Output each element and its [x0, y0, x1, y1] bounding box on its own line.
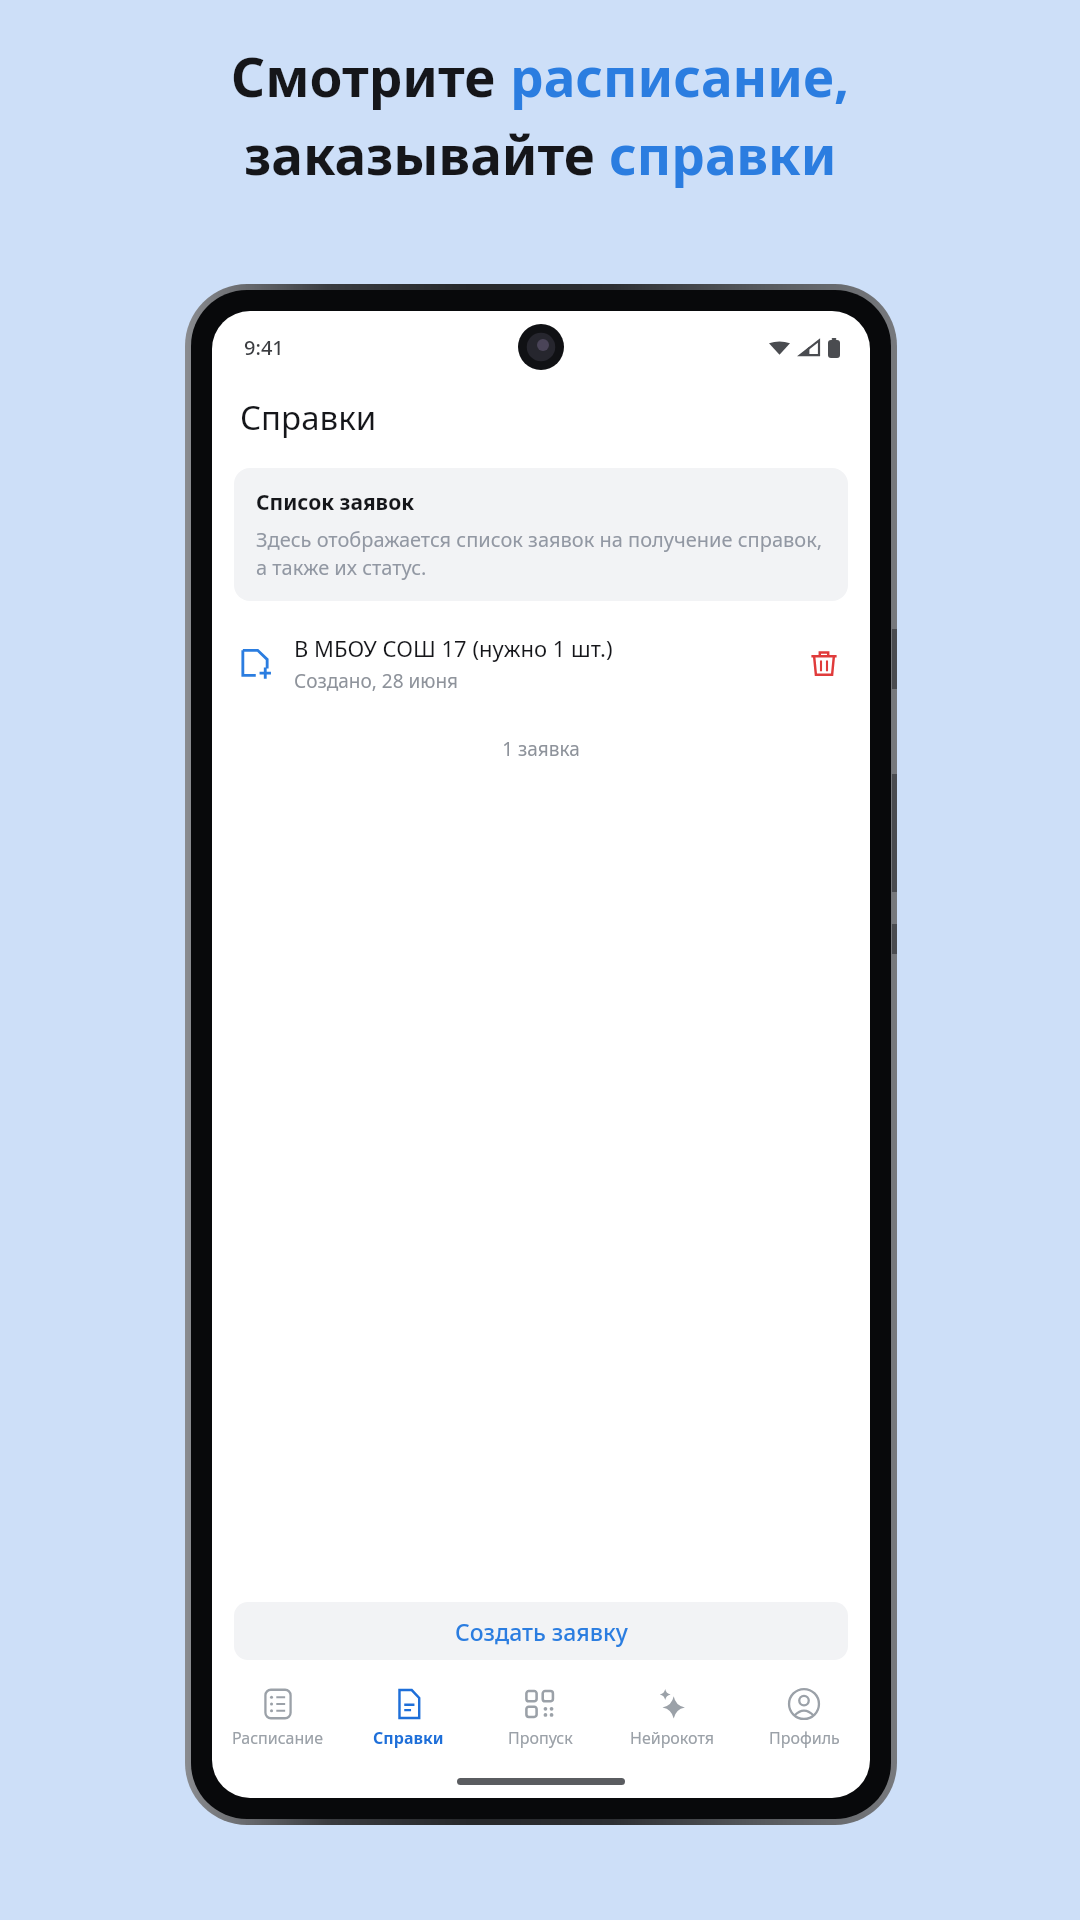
staticText: Профиль	[769, 1727, 840, 1749]
staticText: справки	[609, 118, 837, 190]
staticText: Список заявок	[256, 488, 415, 517]
button[interactable]: Расписание	[212, 1672, 343, 1764]
staticText: Создать заявку	[455, 1616, 628, 1647]
button[interactable]: Пропуск	[474, 1672, 606, 1764]
staticText: Расписание	[232, 1727, 324, 1749]
button[interactable]: Нейрокотя	[606, 1672, 738, 1764]
staticText: Справки	[240, 395, 377, 440]
button[interactable]: Профиль	[738, 1672, 870, 1764]
staticText: 9:41	[244, 334, 284, 361]
staticText: заказывайте	[244, 118, 609, 190]
staticText: Пропуск	[508, 1727, 573, 1749]
staticText: Смотрите	[231, 40, 510, 112]
button[interactable]: Удалить заявку	[802, 642, 846, 686]
button[interactable]: Справки	[343, 1672, 474, 1764]
staticText: Справки	[373, 1727, 444, 1749]
button[interactable]: Список заявок	[234, 468, 848, 601]
staticText: расписание,	[510, 40, 850, 112]
button[interactable]: Создать заявку	[234, 1602, 848, 1660]
staticText: Нейрокотя	[630, 1727, 715, 1749]
button[interactable]: В МБОУ СОШ 17 (нужно 1 шт.)	[212, 623, 870, 704]
staticText: В МБОУ СОШ 17 (нужно 1 шт.)	[294, 633, 613, 663]
staticText: 1 заявка	[212, 736, 870, 762]
staticText: Здесь отображается список заявок на полу…	[256, 526, 826, 581]
staticText: Создано, 28 июня	[294, 668, 459, 694]
